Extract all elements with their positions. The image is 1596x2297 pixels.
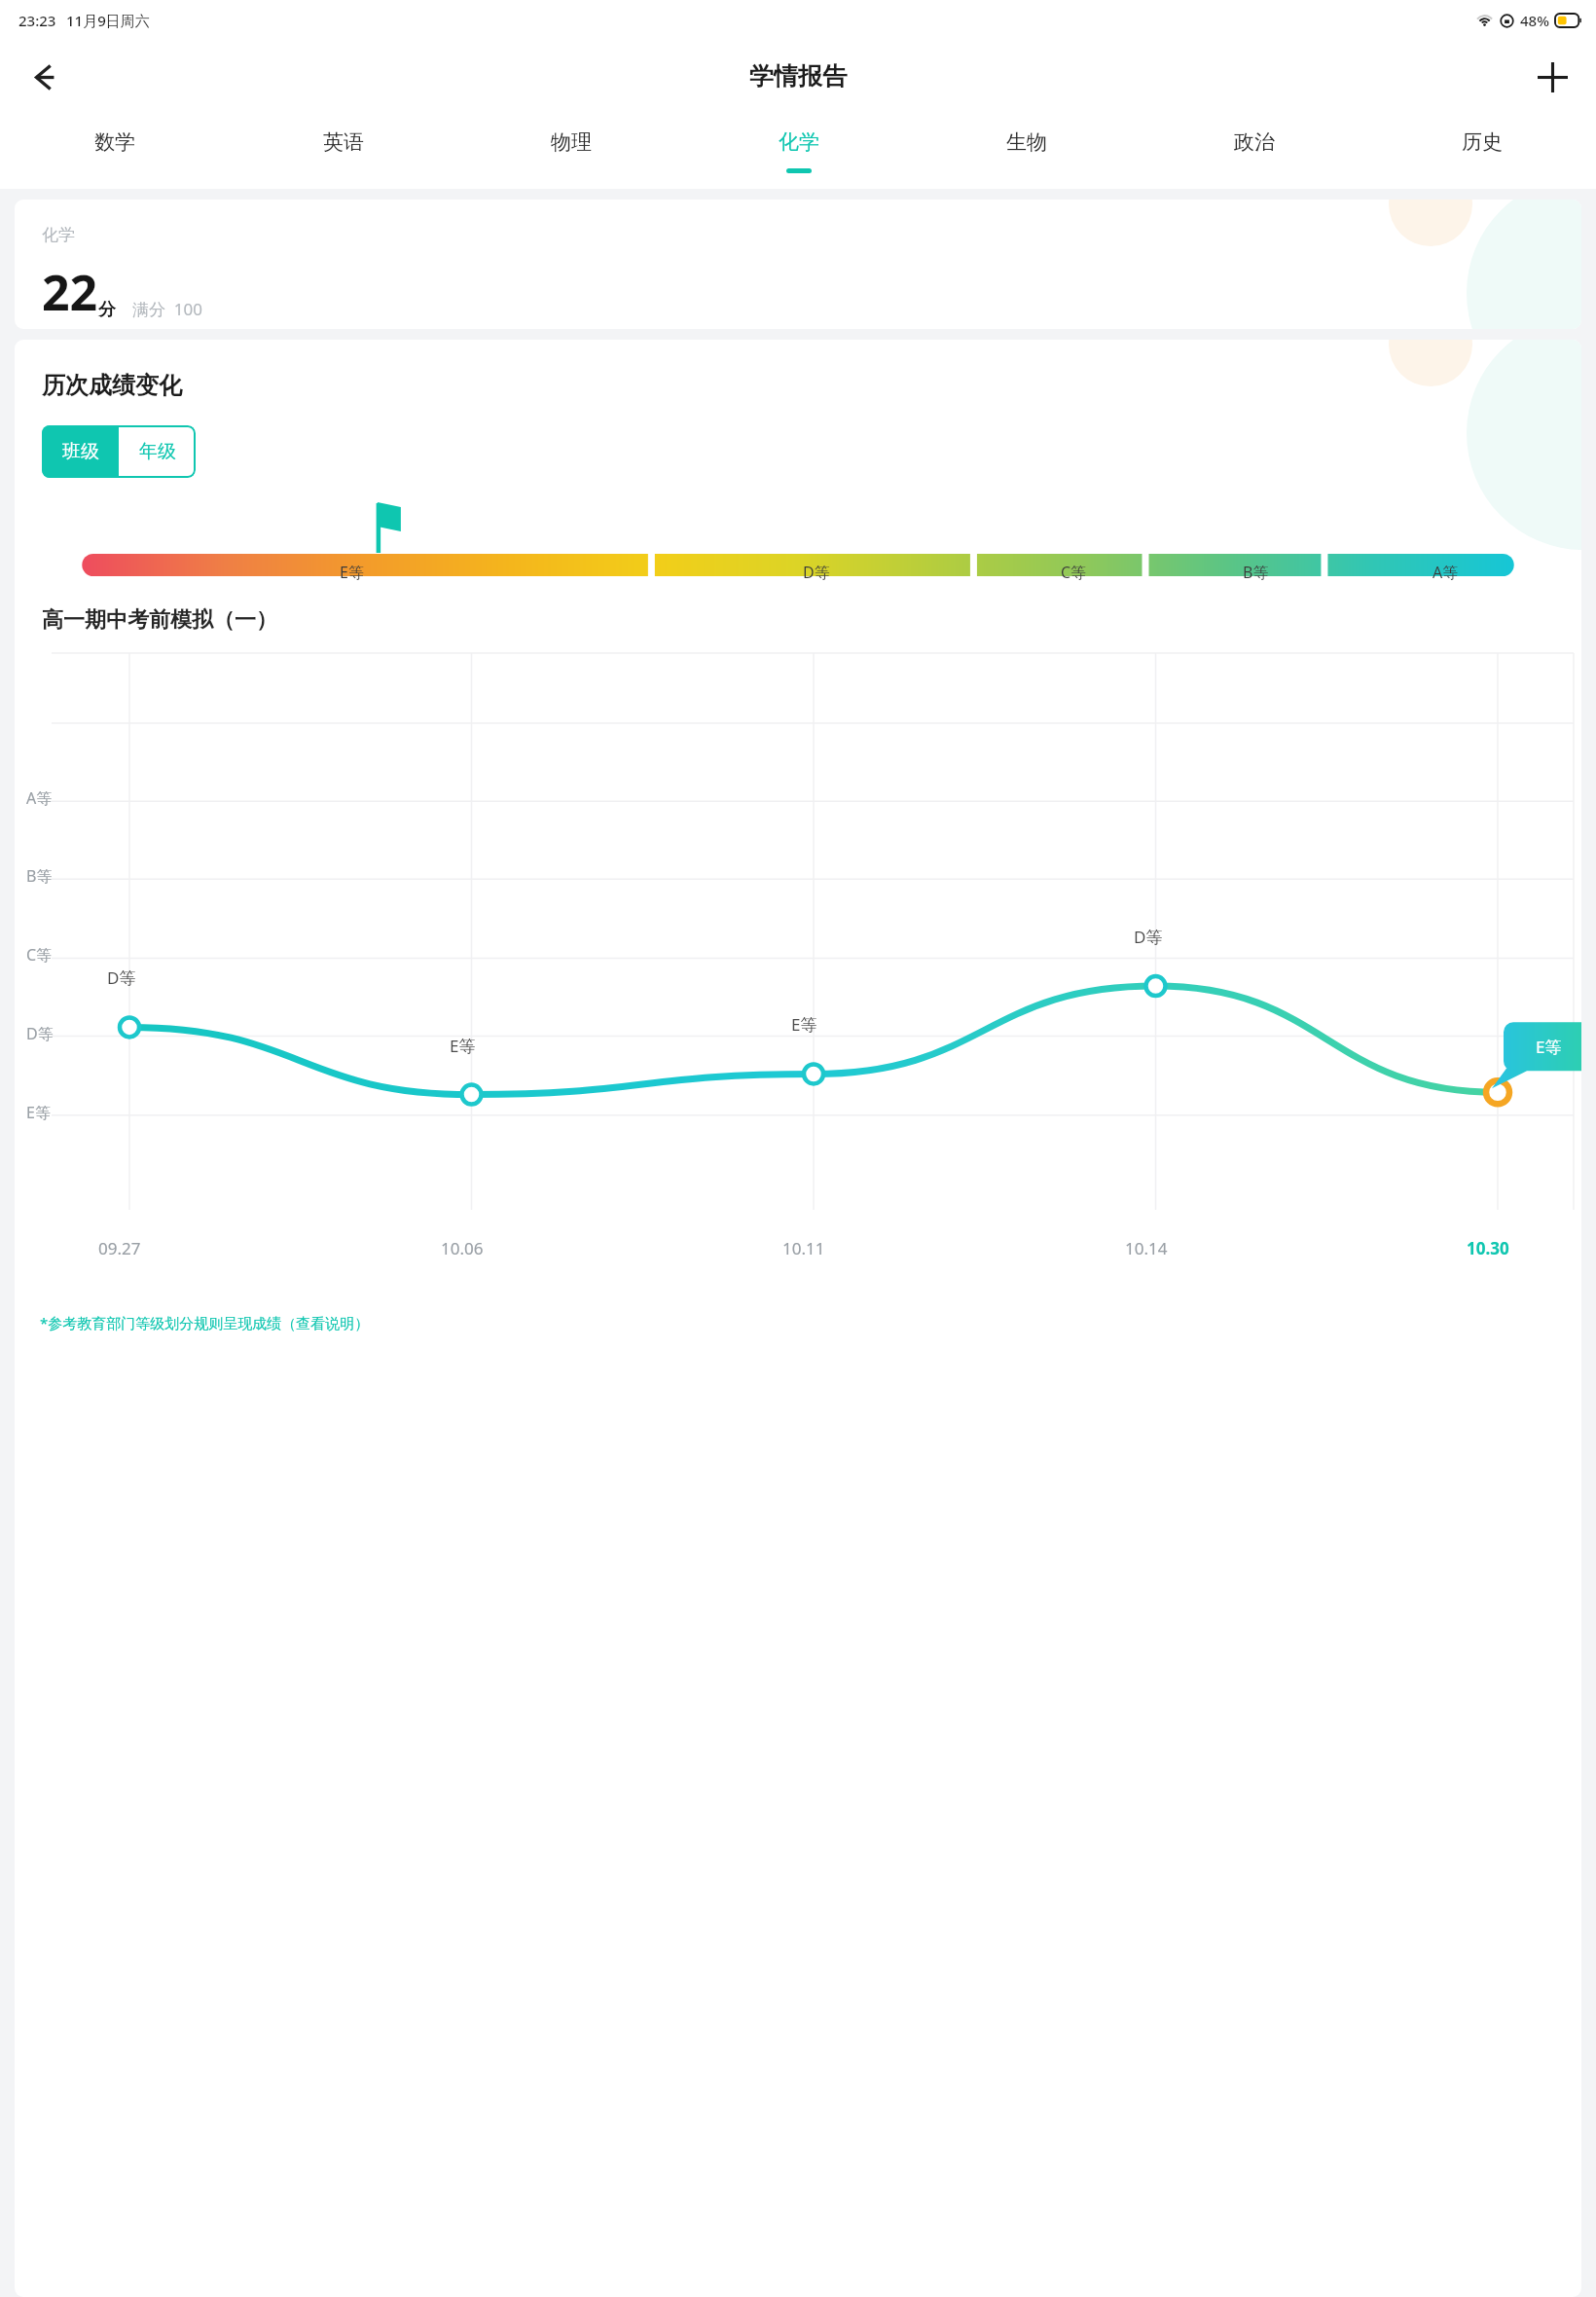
staticText: 23:23 [18, 11, 56, 30]
staticText: A等 [1433, 562, 1459, 583]
button[interactable]: 政治 [1141, 113, 1368, 189]
staticText: 09.27 [98, 1237, 141, 1259]
staticText: E等 [1536, 1036, 1562, 1058]
staticText: C等 [1061, 562, 1087, 583]
button[interactable]: 年级 [119, 425, 196, 478]
staticText: 历次成绩变化 [42, 371, 182, 400]
staticText: D等 [803, 562, 830, 583]
staticText: 化学 [42, 225, 75, 245]
staticText: 生物 [1006, 129, 1047, 155]
staticText: 化学 [779, 129, 819, 155]
staticText: 政治 [1234, 129, 1275, 155]
staticText: E等 [791, 1013, 817, 1036]
button[interactable]: 物理 [457, 113, 685, 189]
button[interactable]: 英语 [229, 113, 457, 189]
staticText: D等 [26, 1023, 54, 1044]
staticText: 10.14 [1125, 1237, 1168, 1259]
staticText: 满分 100 [132, 298, 203, 320]
staticText: 10.06 [441, 1237, 484, 1259]
staticText: 10.30 [1467, 1237, 1509, 1259]
button[interactable]: 班级 [42, 425, 119, 478]
staticText: 历史 [1462, 129, 1503, 155]
button[interactable]: *参考教育部门等级划分规则呈现成绩（查看说明） [40, 1313, 370, 1332]
button[interactable]: 生物 [913, 113, 1141, 189]
staticText: 48% [1520, 11, 1549, 30]
staticText: 22 [42, 259, 98, 325]
staticText: 学情报告 [749, 61, 847, 91]
staticText: 年级 [139, 440, 176, 463]
button[interactable]: 历史 [1368, 113, 1596, 189]
button[interactable]: Back [16, 49, 72, 105]
staticText: E等 [450, 1035, 476, 1057]
staticText: 物理 [551, 129, 592, 155]
staticText: D等 [107, 966, 136, 989]
staticText: D等 [1134, 926, 1163, 948]
staticText: B等 [1243, 562, 1269, 583]
staticText: 10.11 [782, 1237, 825, 1259]
staticText: E等 [340, 562, 364, 583]
staticText: 班级 [62, 440, 99, 463]
staticText: 英语 [323, 129, 364, 155]
staticText: B等 [26, 865, 53, 887]
staticText: 分 [98, 299, 116, 321]
staticText: A等 [26, 787, 53, 809]
button[interactable]: Add [1524, 49, 1580, 105]
staticText: 高一期中考前模拟（一） [42, 606, 277, 634]
button[interactable]: 数学 [0, 113, 229, 189]
staticText: E等 [26, 1102, 51, 1123]
button[interactable]: 化学 [685, 113, 913, 189]
staticText: 11月9日周六 [66, 11, 150, 30]
staticText: 数学 [94, 129, 135, 155]
staticText: C等 [26, 944, 53, 966]
